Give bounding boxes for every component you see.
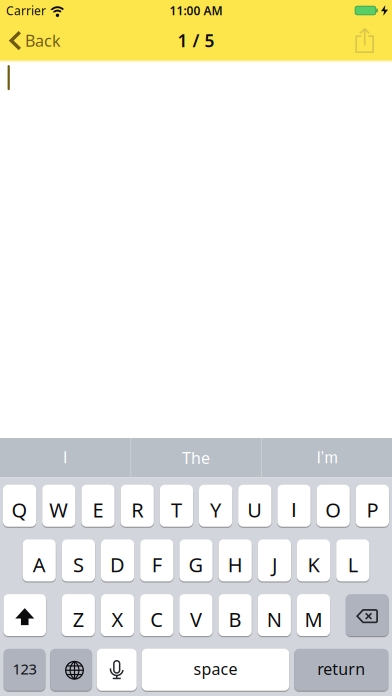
- button[interactable]: W: [42, 485, 75, 527]
- button[interactable]: S: [62, 539, 95, 581]
- button[interactable]: X: [101, 594, 134, 636]
- staticText: R: [131, 496, 143, 523]
- button[interactable]: Share: [355, 28, 392, 53]
- staticText: J: [272, 551, 277, 578]
- button[interactable]: Shift: [3, 594, 46, 636]
- button[interactable]: I: [0, 438, 130, 477]
- button[interactable]: C: [140, 594, 173, 636]
- staticText: S: [73, 551, 84, 578]
- button[interactable]: F: [140, 539, 173, 581]
- button[interactable]: U: [238, 485, 271, 527]
- button[interactable]: The: [131, 438, 261, 477]
- staticText: Y: [210, 496, 221, 523]
- button[interactable]: M: [297, 594, 330, 636]
- staticText: U: [247, 496, 262, 523]
- button[interactable]: O: [317, 485, 350, 527]
- staticText: W: [49, 496, 68, 523]
- staticText: 123: [12, 659, 36, 678]
- button[interactable]: 123: [4, 649, 45, 691]
- button[interactable]: I: [277, 485, 311, 527]
- button[interactable]: D: [101, 539, 134, 581]
- button[interactable]: Next keyboard: [50, 649, 92, 691]
- staticText: return: [317, 658, 365, 679]
- staticText: P: [366, 496, 378, 523]
- staticText: N: [267, 606, 282, 632]
- button[interactable]: Q: [3, 485, 36, 527]
- button[interactable]: E: [81, 485, 115, 527]
- staticText: D: [110, 551, 125, 578]
- button[interactable]: K: [297, 539, 330, 581]
- button[interactable]: I’m: [262, 438, 392, 477]
- staticText: G: [188, 551, 203, 578]
- staticText: Q: [12, 496, 28, 523]
- button[interactable]: Z: [62, 594, 95, 636]
- button[interactable]: B: [218, 594, 252, 636]
- button[interactable]: Y: [199, 485, 232, 527]
- staticText: 11:00 AM: [169, 2, 222, 18]
- button[interactable]: Dictate: [97, 649, 137, 691]
- staticText: 1 / 5: [177, 29, 214, 52]
- staticText: I: [291, 498, 297, 521]
- button[interactable]: space: [142, 649, 289, 691]
- staticText: X: [111, 606, 123, 632]
- staticText: A: [33, 551, 46, 578]
- staticText: E: [92, 496, 103, 523]
- button[interactable]: P: [356, 485, 389, 527]
- staticText: L: [348, 551, 358, 578]
- staticText: K: [308, 551, 320, 578]
- staticText: T: [171, 496, 182, 523]
- button[interactable]: J: [258, 539, 291, 581]
- staticText: O: [325, 496, 341, 523]
- button[interactable]: return: [294, 649, 388, 691]
- staticText: I: [63, 449, 67, 467]
- staticText: V: [190, 606, 202, 632]
- button[interactable]: L: [336, 539, 369, 581]
- button[interactable]: Back: [0, 30, 61, 51]
- staticText: Back: [25, 30, 61, 51]
- button[interactable]: V: [179, 594, 212, 636]
- staticText: C: [150, 606, 163, 632]
- staticText: Carrier: [6, 2, 46, 18]
- staticText: B: [229, 606, 242, 632]
- staticText: I’m: [316, 449, 337, 467]
- button[interactable]: R: [121, 485, 154, 527]
- staticText: The: [182, 447, 210, 468]
- button[interactable]: Delete: [346, 594, 388, 636]
- staticText: space: [193, 658, 237, 679]
- button[interactable]: N: [258, 594, 291, 636]
- staticText: H: [228, 551, 243, 578]
- staticText: M: [304, 606, 322, 632]
- button[interactable]: H: [219, 539, 252, 581]
- button[interactable]: T: [160, 485, 193, 527]
- button[interactable]: G: [179, 539, 213, 581]
- staticText: Z: [73, 606, 84, 632]
- staticText: F: [152, 551, 162, 578]
- button[interactable]: A: [23, 539, 56, 581]
